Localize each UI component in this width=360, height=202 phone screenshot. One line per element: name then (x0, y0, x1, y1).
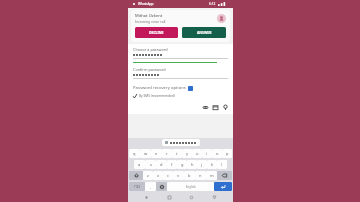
button[interactable]: Mithat Ozkent (131, 10, 230, 42)
button[interactable]: i (202, 149, 212, 158)
button[interactable]: o (212, 149, 222, 158)
button[interactable]: c (163, 171, 173, 180)
button[interactable]: q (129, 149, 140, 158)
button[interactable]: g (177, 160, 187, 169)
button[interactable]: Home (166, 194, 173, 201)
staticText: e (155, 151, 158, 156)
staticText: English (186, 185, 196, 189)
button[interactable]: w (140, 149, 151, 158)
button[interactable]: l (217, 160, 227, 169)
staticText: s (150, 162, 152, 167)
button[interactable]: x (153, 171, 163, 180)
button[interactable]: Calendar (212, 104, 218, 110)
staticText: k (211, 162, 214, 167)
staticText: Password recovery options (133, 85, 186, 91)
button[interactable]: Location (222, 104, 228, 110)
button[interactable]: f (167, 160, 177, 169)
button[interactable]: n (195, 171, 206, 180)
button[interactable] (156, 182, 167, 191)
staticText: By SMS (recommended) (139, 94, 175, 98)
staticText: d (160, 162, 163, 167)
staticText: n (199, 173, 202, 178)
button[interactable] (214, 182, 232, 191)
button[interactable]: ?123 (129, 182, 145, 191)
staticText: m (210, 173, 214, 178)
staticText: y (186, 151, 189, 156)
staticText: Incoming voice call (135, 19, 166, 24)
button[interactable]: e (151, 149, 162, 158)
button[interactable]: p (222, 149, 232, 158)
button[interactable]: Link (202, 104, 208, 110)
button[interactable]: m (206, 171, 217, 180)
button[interactable]: By SMS (recommended) (133, 94, 175, 98)
staticText: p (226, 151, 229, 156)
staticText: DECLINE (149, 30, 164, 35)
button[interactable]: Recents (188, 194, 195, 201)
staticText: g (181, 162, 184, 167)
button[interactable]: , (145, 182, 156, 191)
staticText: ?123 (134, 185, 141, 189)
staticText: z (147, 173, 149, 178)
button[interactable]: r (162, 149, 172, 158)
button[interactable]: English (167, 182, 214, 191)
staticText: v (177, 173, 180, 178)
button[interactable]: u (192, 149, 202, 158)
button[interactable]: v (173, 171, 184, 180)
button[interactable]: s (145, 160, 156, 169)
staticText: x (157, 173, 160, 178)
staticText: q (133, 151, 136, 156)
button[interactable]: t (172, 149, 182, 158)
button[interactable]: a (134, 160, 145, 169)
staticText: l (221, 162, 223, 167)
staticText: Mithat Ozkent (135, 13, 163, 18)
staticText: a (138, 162, 141, 167)
staticText: i (206, 151, 208, 156)
staticText: j (201, 162, 203, 167)
staticText: 6:12 (209, 2, 216, 6)
button[interactable]: k (207, 160, 217, 169)
button[interactable]: h (187, 160, 197, 169)
staticText: u (196, 151, 199, 156)
staticText: f (171, 162, 173, 167)
staticText: o (216, 151, 219, 156)
button[interactable] (162, 139, 200, 146)
button[interactable]: b (184, 171, 195, 180)
staticText: ANSWER (197, 30, 212, 35)
button[interactable]: j (197, 160, 207, 169)
staticText: w (144, 151, 148, 156)
staticText: c (167, 173, 169, 178)
button[interactable]: Shift (129, 171, 143, 180)
button[interactable]: z (143, 171, 153, 180)
staticText: b (188, 173, 191, 178)
button[interactable]: Help (188, 86, 193, 91)
button[interactable]: y (182, 149, 192, 158)
staticText: Confirm password (133, 67, 166, 72)
button[interactable]: ANSWER (182, 27, 226, 38)
staticText: WhatsApp (138, 2, 154, 6)
button[interactable]: Backspace (217, 171, 232, 180)
staticText: h (191, 162, 194, 167)
button[interactable]: d (156, 160, 167, 169)
staticText: , (150, 184, 151, 189)
button[interactable]: Keyboard hide (211, 194, 218, 201)
staticText: t (176, 151, 178, 156)
button[interactable]: DECLINE (135, 27, 178, 38)
button[interactable]: Back (143, 194, 150, 201)
staticText: Choose a password (133, 47, 168, 52)
staticText: r (166, 151, 168, 156)
